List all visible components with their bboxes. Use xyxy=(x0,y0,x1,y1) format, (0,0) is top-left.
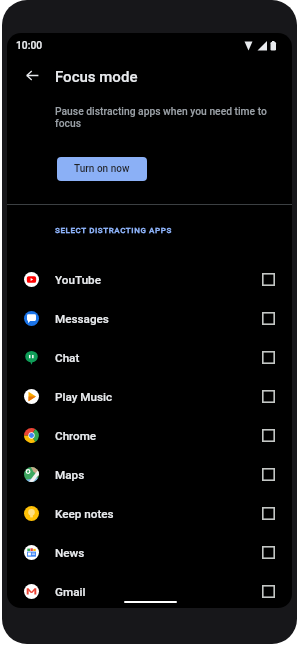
staticText: Chat xyxy=(55,351,80,365)
staticText: 10:00 xyxy=(16,39,43,51)
staticText: Maps xyxy=(55,468,85,482)
button[interactable]: Chrome xyxy=(7,416,292,455)
button[interactable]: Play Music xyxy=(7,377,292,416)
button[interactable]: Back xyxy=(19,62,45,88)
button[interactable]: News xyxy=(7,533,292,572)
staticText: Messages xyxy=(55,312,109,326)
button[interactable]: Turn on now xyxy=(57,157,147,181)
button[interactable]: Maps xyxy=(7,455,292,494)
button[interactable]: YouTube xyxy=(7,260,292,299)
staticText: Chrome xyxy=(55,429,97,443)
button[interactable]: Messages xyxy=(7,299,292,338)
button[interactable]: Chat xyxy=(7,338,292,377)
staticText: Pause distracting apps when you need tim… xyxy=(55,105,273,130)
staticText: YouTube xyxy=(55,273,101,287)
staticText: Focus mode xyxy=(55,68,138,86)
staticText: SELECT DISTRACTING APPS xyxy=(55,226,172,235)
staticText: Keep notes xyxy=(55,507,114,521)
staticText: Play Music xyxy=(55,390,113,404)
button[interactable]: Gmail xyxy=(7,572,292,608)
button[interactable]: Keep notes xyxy=(7,494,292,533)
staticText: Gmail xyxy=(55,585,86,599)
staticText: News xyxy=(55,546,85,560)
staticText: Turn on now xyxy=(74,163,130,175)
